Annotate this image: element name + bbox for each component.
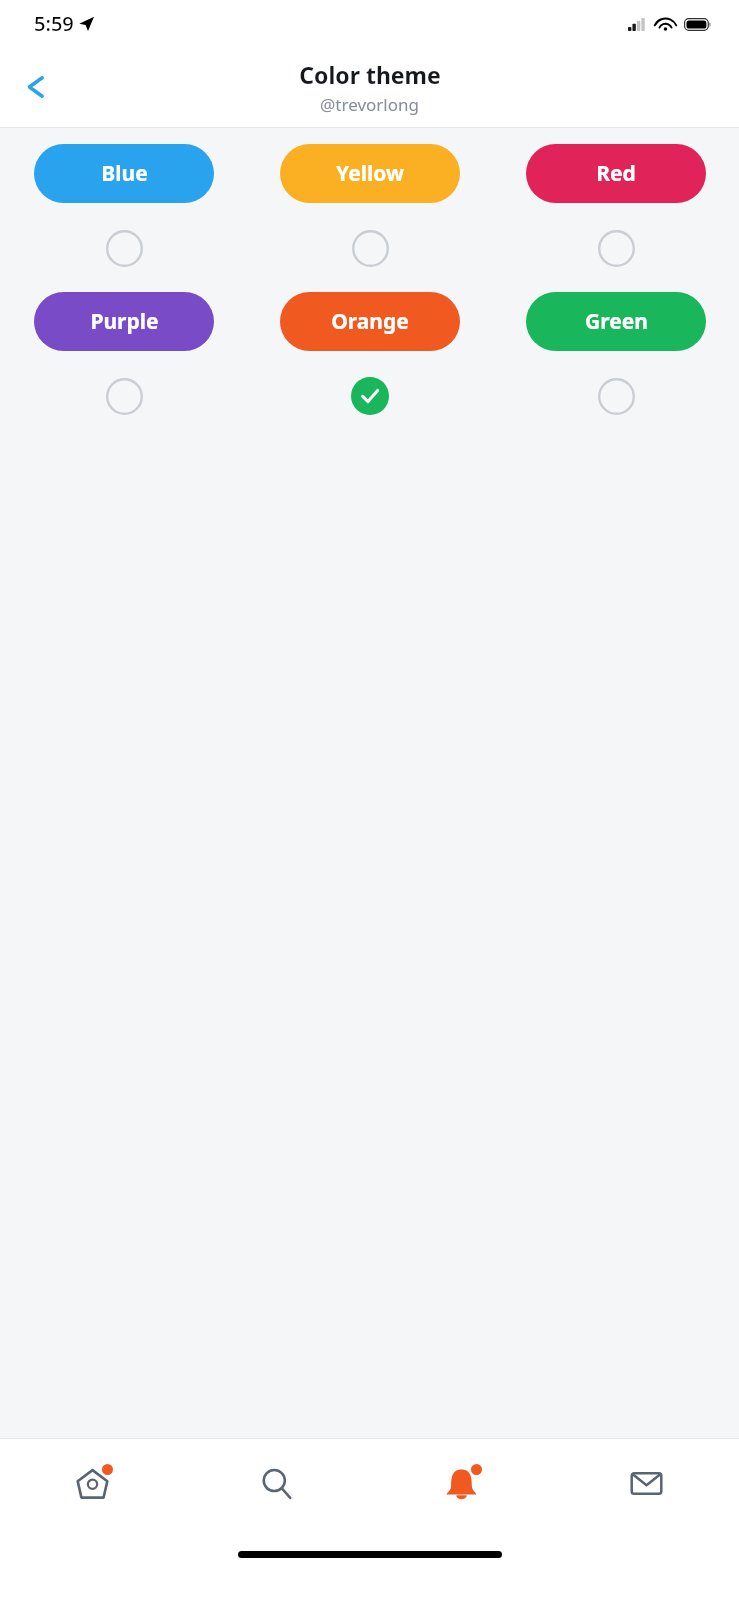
button[interactable]: Search — [184, 1451, 369, 1515]
staticText: Purple — [90, 307, 159, 336]
button[interactable]: Select Blue — [102, 226, 146, 270]
button[interactable]: Purple — [34, 292, 214, 351]
staticText: Yellow — [336, 159, 404, 188]
button[interactable]: Select Purple — [102, 374, 146, 418]
button[interactable]: Messages — [554, 1451, 739, 1515]
staticText: 5:59 — [34, 10, 74, 37]
staticText: Blue — [101, 159, 148, 188]
button[interactable]: Notifications — [369, 1451, 554, 1515]
staticText: Color theme — [299, 59, 441, 90]
button[interactable]: Blue — [34, 144, 214, 203]
button[interactable]: Select Yellow — [348, 226, 392, 270]
button[interactable]: Green — [526, 292, 706, 351]
staticText: Green — [585, 307, 648, 336]
button[interactable]: Red — [526, 144, 706, 203]
button[interactable]: Select Red — [594, 226, 638, 270]
button[interactable]: Select Orange — [348, 374, 392, 418]
button[interactable]: Select Green — [594, 374, 638, 418]
staticText: Orange — [331, 307, 409, 336]
button[interactable]: Home — [0, 1451, 184, 1515]
button[interactable]: Orange — [280, 292, 460, 351]
button[interactable]: Yellow — [280, 144, 460, 203]
button[interactable]: Back — [8, 59, 64, 115]
staticText: @trevorlong — [320, 93, 419, 116]
staticText: Red — [596, 159, 636, 188]
